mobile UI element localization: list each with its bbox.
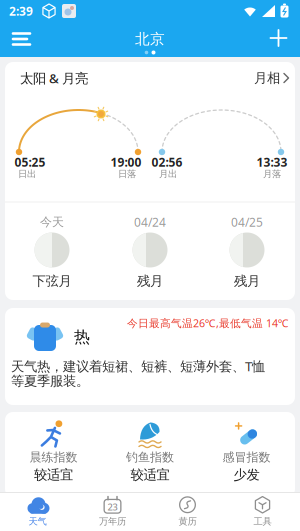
staticText: 黄历 [178, 516, 196, 527]
staticText: 少发 [234, 467, 260, 483]
staticText: 月落 [263, 168, 281, 180]
button[interactable]: 感冒指数 [223, 420, 271, 483]
button[interactable]: 23 [75, 492, 150, 531]
staticText: 日出 [18, 168, 36, 180]
staticText: 月出 [159, 168, 177, 180]
button[interactable]: Menu [13, 33, 30, 45]
staticText: 北京 [135, 30, 165, 48]
staticText: 工具 [253, 516, 271, 527]
staticText: 02:56 [151, 154, 182, 170]
button[interactable]: 工具 [225, 492, 300, 531]
staticText: 残月 [137, 273, 163, 289]
staticText: 万年历 [99, 516, 126, 527]
staticText: 今天 [40, 215, 64, 229]
staticText: 太阳 & 月亮 [20, 69, 88, 87]
button[interactable]: 天气 [0, 492, 75, 531]
button[interactable]: 晨练指数 [29, 420, 77, 483]
button[interactable]: 黄历 [150, 492, 225, 531]
staticText: 较适宜 [34, 467, 73, 483]
staticText: 下弦月 [32, 273, 71, 289]
staticText: 04/25 [231, 214, 263, 230]
staticText: 较适宜 [130, 467, 169, 483]
staticText: 今日最高气温26℃,最低气温 14℃ [127, 316, 289, 330]
staticText: 感冒指数 [223, 450, 271, 465]
staticText: 天气热，建议着短裙、短裤、短薄外套、T恤 [11, 357, 265, 375]
staticText: 2:39 [9, 3, 33, 19]
staticText: 日落 [118, 168, 136, 180]
staticText: 23 [107, 501, 117, 513]
staticText: 05:25 [14, 154, 45, 170]
staticText: 13:33 [256, 154, 287, 170]
button[interactable]: 月相 [254, 70, 290, 86]
staticText: 热 [74, 327, 90, 347]
staticText: 04/24 [134, 214, 166, 230]
staticText: 钓鱼指数 [126, 450, 174, 465]
button[interactable]: 钓鱼指数 [126, 420, 174, 483]
staticText: 天气 [28, 516, 46, 527]
staticText: 等夏季服装。 [11, 373, 89, 389]
staticText: 19:00 [110, 154, 141, 170]
staticText: 残月 [234, 273, 260, 289]
button[interactable]: Add city [270, 30, 286, 46]
staticText: 月相 [254, 70, 280, 86]
staticText: 晨练指数 [29, 450, 77, 465]
